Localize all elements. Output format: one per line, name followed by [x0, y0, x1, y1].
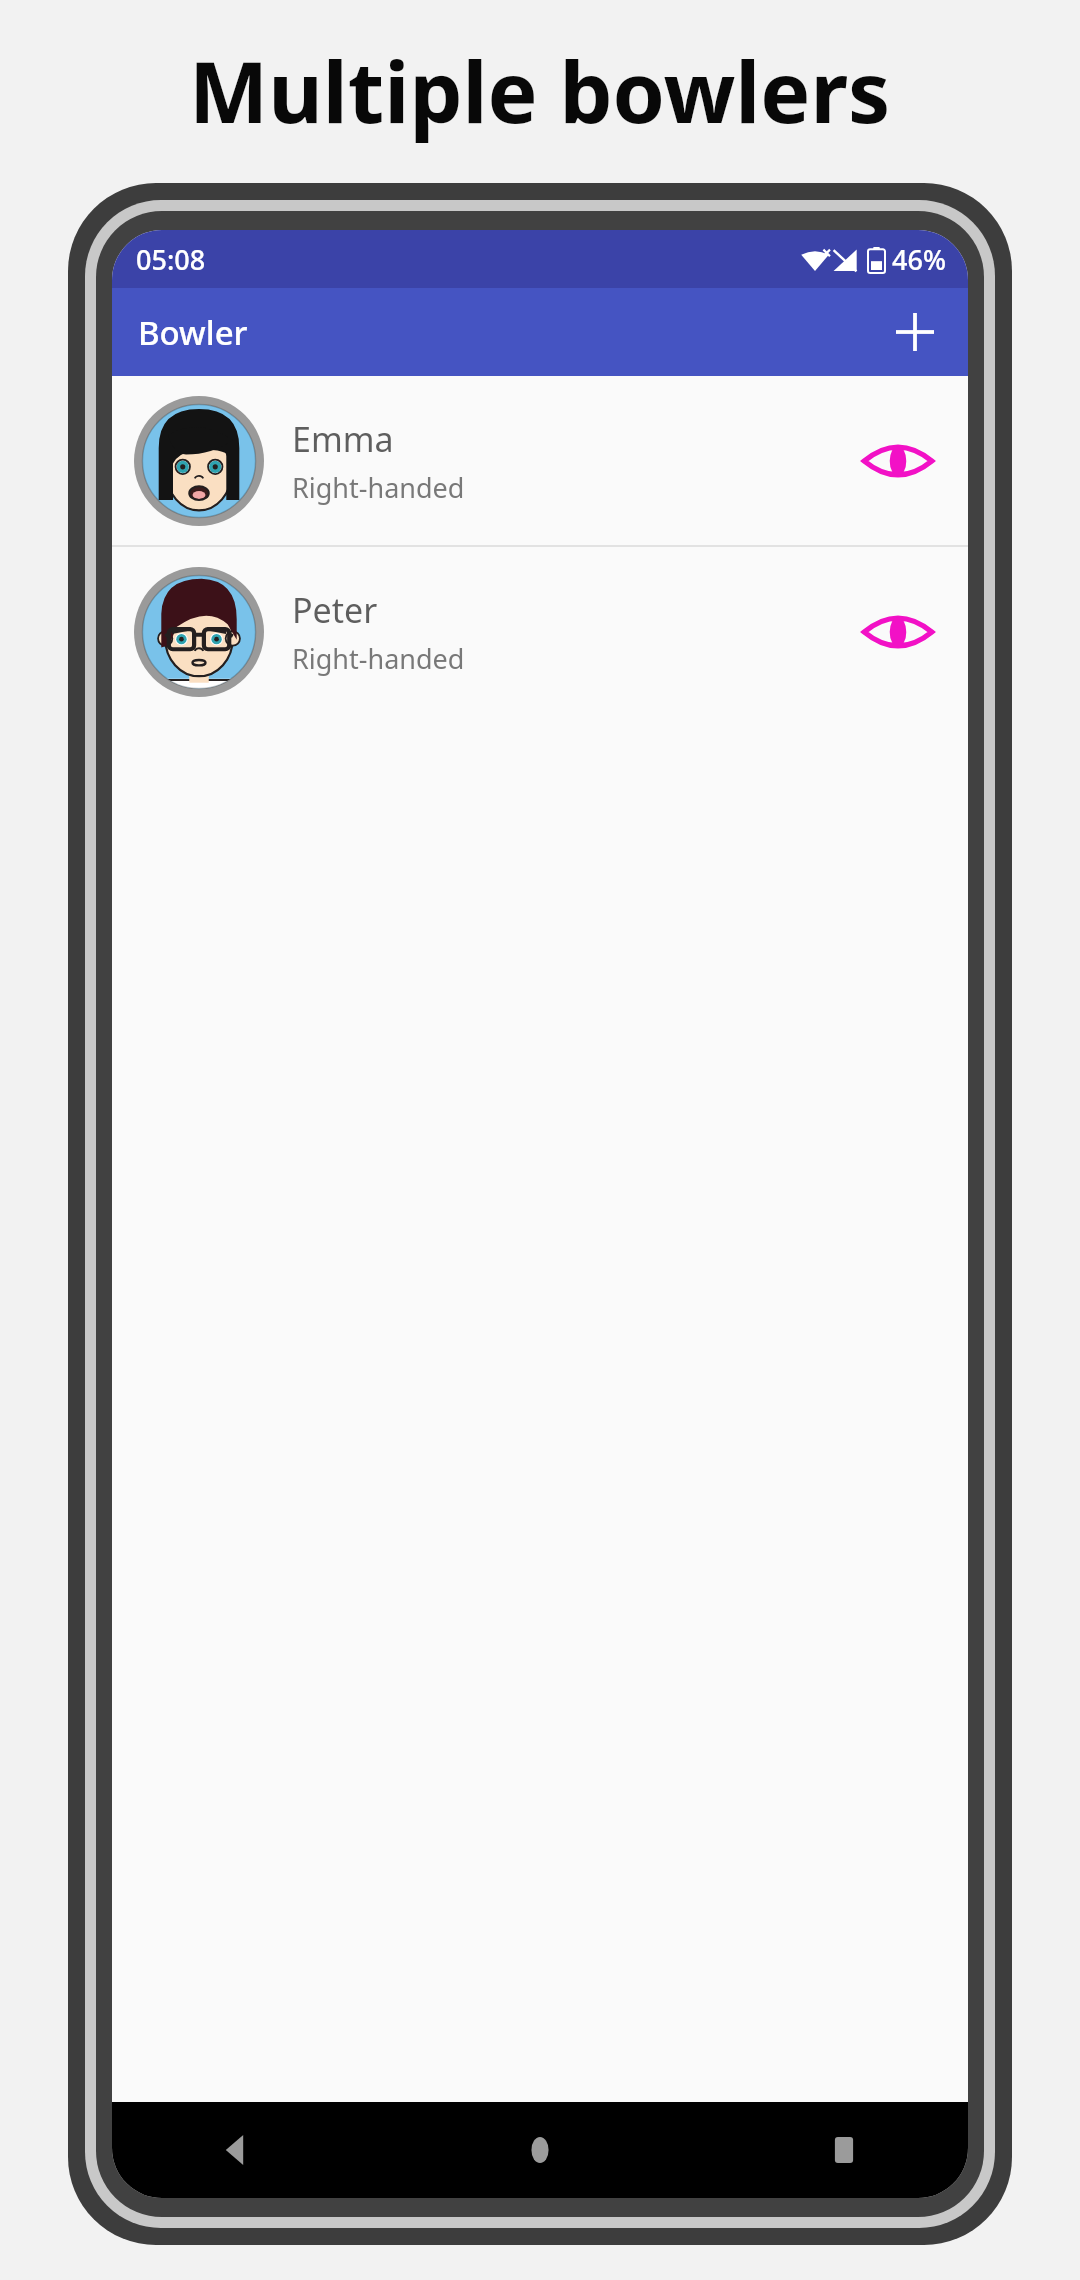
button[interactable]: Emma — [112, 376, 968, 545]
staticText: 05:08 — [136, 241, 206, 278]
staticText: Peter — [292, 587, 378, 633]
button[interactable]: Recent apps — [808, 2114, 880, 2186]
button[interactable]: Add bowler — [884, 301, 946, 363]
staticText: Bowler — [138, 310, 248, 355]
staticText: Emma — [292, 416, 394, 462]
button[interactable]: Toggle visibility of Peter — [848, 582, 948, 682]
staticText: Right-handed — [292, 640, 465, 677]
button[interactable]: Peter — [112, 547, 968, 716]
staticText: 46% — [892, 241, 946, 278]
staticText: Right-handed — [292, 469, 465, 506]
staticText: Multiple bowlers — [189, 33, 891, 147]
button[interactable]: Back — [200, 2114, 272, 2186]
button[interactable]: Toggle visibility of Emma — [848, 411, 948, 511]
button[interactable]: Home — [504, 2114, 576, 2186]
